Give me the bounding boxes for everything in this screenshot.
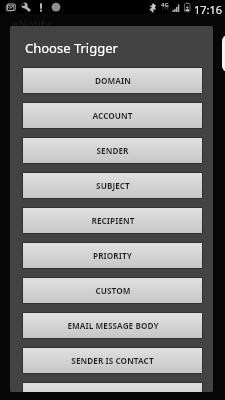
button[interactable]: CUSTOM xyxy=(22,277,203,304)
staticText: RECIPIENT xyxy=(91,215,135,226)
staticText: PRIORITY xyxy=(93,250,132,261)
button[interactable]: ACCOUNT xyxy=(22,102,203,129)
staticText: SENDER IS CONTACT xyxy=(71,355,154,366)
button[interactable]: ATTACHMENT xyxy=(22,382,203,392)
staticText: LTE xyxy=(162,6,169,11)
staticText: 17:16 xyxy=(194,2,223,16)
staticText: DOMAIN xyxy=(95,75,131,86)
staticText: eNotify xyxy=(12,16,51,31)
button[interactable]: SENDER IS CONTACT xyxy=(22,347,203,374)
button[interactable]: SUBJECT xyxy=(22,172,203,199)
button[interactable]: SENDER xyxy=(22,137,203,164)
button[interactable]: EMAIL MESSAGE BODY xyxy=(22,312,203,339)
staticText: ACCOUNT xyxy=(92,110,133,121)
staticText: 4G xyxy=(161,1,169,9)
staticText: CUSTOM xyxy=(95,285,131,296)
button[interactable]: DOMAIN xyxy=(22,67,203,94)
staticText: Choose Trigger xyxy=(25,39,118,57)
button[interactable]: PRIORITY xyxy=(22,242,203,269)
staticText: SENDER xyxy=(96,145,129,156)
staticText: SUBJECT xyxy=(96,180,130,191)
staticText: EMAIL MESSAGE BODY xyxy=(67,320,159,331)
button[interactable]: RECIPIENT xyxy=(22,207,203,234)
